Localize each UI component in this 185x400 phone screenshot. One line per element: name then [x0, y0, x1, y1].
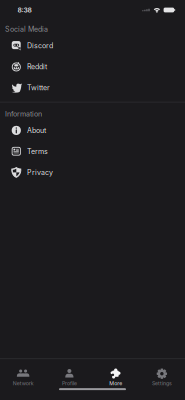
staticText: Settings [152, 380, 172, 387]
staticText: About [27, 126, 46, 135]
staticText: Reddit [27, 62, 47, 71]
staticText: Terms [27, 147, 48, 156]
button[interactable]: Twitter [0, 77, 185, 98]
staticText: Social Media [5, 25, 48, 33]
button[interactable]: More [92, 366, 139, 388]
button[interactable]: About [0, 120, 185, 141]
button[interactable]: Network [0, 366, 46, 388]
button[interactable]: Profile [46, 366, 92, 388]
button[interactable]: Privacy [0, 162, 185, 183]
staticText: Network [13, 380, 34, 387]
staticText: Discord [27, 41, 53, 50]
staticText: Information [5, 110, 42, 118]
button[interactable]: Terms [0, 141, 185, 162]
button[interactable]: Discord [0, 35, 185, 56]
staticText: Privacy [27, 168, 53, 177]
staticText: Profile [62, 380, 77, 387]
button[interactable]: Reddit [0, 56, 185, 77]
staticText: Twitter [27, 83, 50, 92]
button[interactable]: Settings [139, 366, 185, 388]
staticText: 8:38 [17, 6, 31, 14]
staticText: More [109, 380, 122, 387]
